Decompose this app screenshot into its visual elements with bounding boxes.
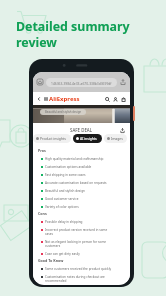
staticText: Product insights [40, 136, 66, 141]
staticText: Detailed summary review [16, 18, 130, 51]
button[interactable]: Share [119, 78, 127, 86]
staticText: Possible delay in shipping [45, 220, 83, 224]
button[interactable]: Search [103, 95, 111, 103]
staticText: Not as elegant looking in person for som… [45, 240, 115, 248]
staticText: Fast shipping in some cases [45, 173, 86, 177]
button[interactable]: Account [111, 95, 119, 103]
staticText: Beautiful and stylish design [45, 110, 82, 114]
staticText: High quality material and craftsmanship [45, 157, 104, 161]
staticText: Incorrect product version received in so… [45, 228, 115, 236]
button[interactable]: Home [36, 78, 44, 86]
staticText: Good customer service [45, 197, 79, 201]
staticText: Accurate customisation based on requests [45, 181, 107, 185]
staticText: Customisation notes during checkout are … [45, 275, 115, 282]
button[interactable]: Images [104, 134, 127, 143]
button[interactable]: Share [118, 126, 126, 134]
staticText: Good To Know [38, 258, 64, 263]
staticText: Pros [38, 148, 46, 153]
staticText: Case can get dirty easily [45, 252, 80, 256]
staticText: Variety of color options [45, 205, 79, 209]
staticText: Beautiful and stylish design [45, 189, 85, 193]
staticText: SAFE DEAL [70, 127, 93, 133]
staticText: Some customers received the product quic… [45, 267, 112, 271]
button[interactable]: Product insights [33, 134, 71, 143]
staticText: AliExpress [49, 95, 80, 103]
staticText: 146363-3984-4e33-a670-338b3d3699df [51, 81, 112, 85]
staticText: AI insights [80, 136, 97, 141]
button[interactable]: Back [35, 95, 42, 102]
button[interactable]: 146363-3984-4e33-a670-338b3d3699df [46, 78, 117, 87]
staticText: Cons [38, 211, 47, 216]
button[interactable]: Menu [42, 95, 49, 102]
button[interactable]: AI insights [73, 134, 102, 143]
button[interactable]: Cart [119, 95, 127, 103]
staticText: Images [111, 136, 123, 141]
staticText: Customisation options available [45, 165, 92, 169]
